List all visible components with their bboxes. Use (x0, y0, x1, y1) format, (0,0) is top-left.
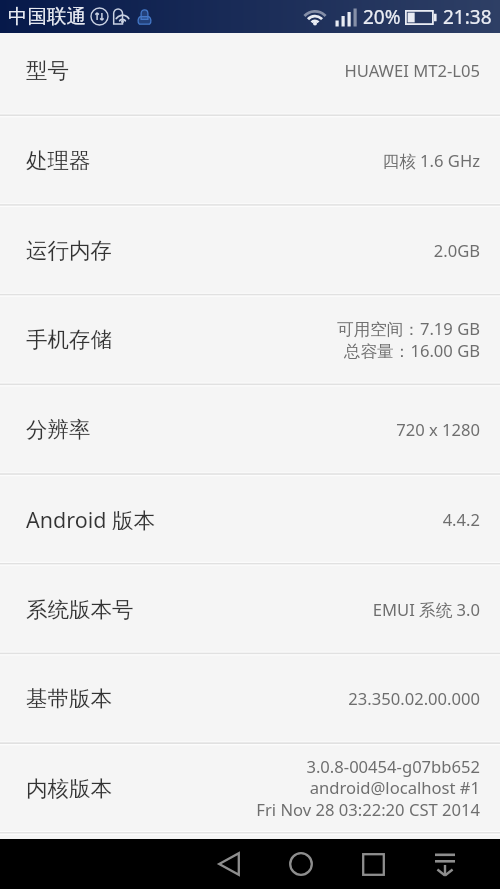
button[interactable]: Android 版本 (0, 474, 500, 564)
staticText: 基带版本 (26, 685, 112, 712)
staticText: 处理器 (26, 147, 91, 174)
button[interactable]: 手机存储 (0, 294, 500, 384)
staticText: Android 版本 (26, 505, 156, 534)
staticText: 型号 (26, 57, 69, 84)
staticText: 720 x 1280 (396, 418, 480, 441)
button[interactable]: 系统版本号 (0, 564, 500, 654)
button[interactable]: 运行内存 (0, 205, 500, 295)
staticText: 3.0.8-00454-g07bb652 android@localhost #… (256, 755, 480, 821)
staticText: 21:38 (443, 4, 492, 30)
staticText: 分辨率 (26, 416, 91, 443)
button[interactable]: Hide navigation bar (425, 844, 465, 884)
staticText: 2.0GB (433, 239, 480, 262)
staticText: HUAWEI MT2-L05 (344, 59, 480, 82)
button[interactable]: Back (209, 844, 249, 884)
staticText: 运行内存 (26, 237, 112, 264)
staticText: 4.4.2 (442, 508, 480, 531)
button[interactable]: Home (281, 844, 321, 884)
staticText: EMUI 系统 3.0 (372, 598, 480, 621)
button[interactable]: 型号 (0, 33, 500, 115)
staticText: 可用空间：7.19 GB 总容量：16.00 GB (336, 317, 480, 362)
staticText: 20% (363, 4, 401, 30)
button[interactable]: 分辨率 (0, 384, 500, 474)
staticText: 内核版本 (26, 775, 112, 802)
staticText: 系统版本号 (26, 596, 134, 623)
button[interactable]: 内核版本 (0, 743, 500, 833)
staticText: 手机存储 (26, 326, 112, 353)
staticText: 四核 1.6 GHz (382, 149, 480, 172)
button[interactable]: Recent apps (353, 844, 393, 884)
staticText: 中国联通 (8, 4, 86, 29)
staticText: 23.350.02.00.000 (348, 687, 480, 710)
button[interactable]: 处理器 (0, 115, 500, 205)
button[interactable]: 基带版本 (0, 653, 500, 743)
